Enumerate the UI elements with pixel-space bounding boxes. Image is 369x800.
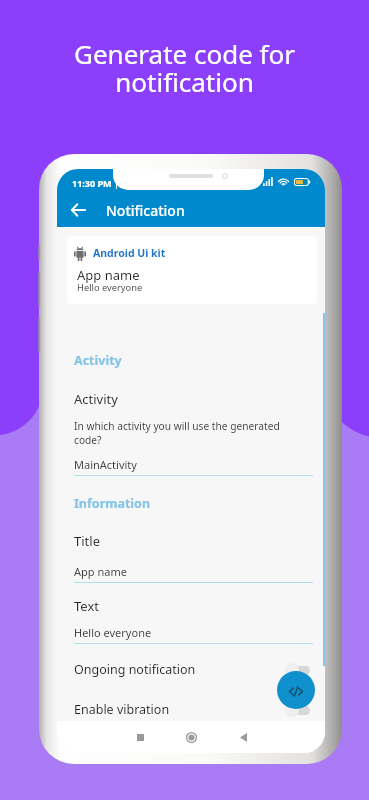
staticText: MainActivity <box>74 457 137 472</box>
button[interactable]: Generate code <box>277 671 315 709</box>
staticText: App name <box>77 266 140 284</box>
staticText: Notification <box>106 201 185 220</box>
button[interactable]: Ongoing notification <box>74 661 313 678</box>
button[interactable]: Recents <box>128 725 152 749</box>
staticText: Ongoing notification <box>74 661 196 678</box>
staticText: In which activity you will use the gener… <box>74 419 280 447</box>
button[interactable]: Home <box>179 725 203 749</box>
staticText: Hello everyone <box>77 281 143 294</box>
button[interactable]: Back <box>57 193 325 227</box>
staticText: Information <box>74 495 151 512</box>
button[interactable]: Hello everyone <box>74 625 313 644</box>
button[interactable]: MainActivity <box>74 457 313 476</box>
staticText: App name <box>74 564 127 579</box>
staticText: Title <box>74 532 100 550</box>
staticText: Activity <box>74 390 118 408</box>
button[interactable]: Back <box>57 193 98 227</box>
staticText: Generate code for notification <box>0 36 369 99</box>
button[interactable]: Back <box>231 725 255 749</box>
staticText: Text <box>74 597 99 615</box>
button[interactable]: App name <box>74 564 313 583</box>
staticText: Enable vibration <box>74 701 170 718</box>
button[interactable]: Android Ui kit <box>67 236 317 304</box>
staticText: Android Ui kit <box>93 246 166 260</box>
button[interactable]: Enable vibration <box>74 701 313 718</box>
staticText: 11:30 PM | 2 <box>72 177 127 189</box>
staticText: Activity <box>74 352 122 369</box>
staticText: Hello everyone <box>74 625 152 640</box>
